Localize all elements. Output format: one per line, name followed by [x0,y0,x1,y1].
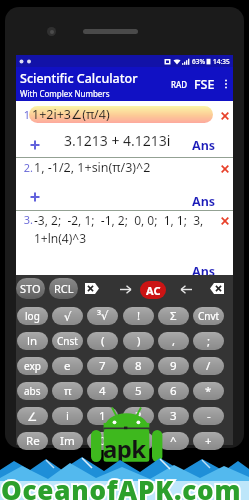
button[interactable]: AC [140,281,166,299]
staticText: RCL [54,281,74,296]
button[interactable]: ( [87,332,118,350]
button[interactable]: / [193,357,224,375]
button[interactable]: Delete entry [218,162,231,175]
button[interactable]: , [158,332,189,350]
button[interactable]: 1 [87,407,118,425]
button[interactable]: abs [17,382,48,400]
button[interactable]: Cnst [52,332,83,350]
staticText: 4 [99,383,106,399]
button[interactable]: More options [219,67,233,101]
button[interactable]: Move left [177,280,195,298]
button[interactable]: ! [123,307,154,325]
staticText: 1+ln(4)^3 [34,230,87,246]
button[interactable]: Backspace [210,283,224,294]
button[interactable]: 2 [123,407,154,425]
button[interactable]: Ans [163,137,221,153]
button[interactable]: ; [193,332,224,350]
button[interactable]: 1+2i+3∠(π/4) [29,106,213,123]
button[interactable]: i [52,407,83,425]
staticText: 2. [21,160,33,175]
staticText: STO [20,281,41,296]
staticText: - [207,408,211,424]
staticText: ln [27,333,38,349]
staticText: ^ [170,433,177,449]
staticText: Σ [170,308,177,324]
button[interactable]: Delete entry [218,214,231,227]
staticText: √ [64,310,72,323]
button[interactable]: exp [17,357,48,375]
button[interactable]: ln [17,332,48,350]
button[interactable]: . [123,432,154,450]
button[interactable]: ∠ [17,407,48,425]
staticText: π [64,383,72,399]
button[interactable]: Ans [163,193,221,209]
button[interactable]: √ [52,307,83,325]
button[interactable]: 6 [158,382,189,400]
staticText: ( [101,333,105,349]
button[interactable]: 9 [158,357,189,375]
button[interactable]: Re [17,432,48,450]
staticText: 3. [21,212,33,227]
staticText: 1, -1/2, 1+sin(π/3)^2 [34,159,151,176]
staticText: 14:35 [213,57,230,66]
staticText: ∠ [27,410,38,423]
button[interactable]: - [193,407,224,425]
button[interactable]: 8 [123,357,154,375]
staticText: 2 [135,408,142,424]
button[interactable]: Σ [158,307,189,325]
staticText: e [64,358,71,374]
button[interactable]: 0 [87,432,118,450]
button[interactable]: log [17,307,48,325]
staticText: -3, 2; -2, 1; -1, 2; 0, 0; 1, 1; 3, [34,212,204,228]
button[interactable]: π [52,382,83,400]
staticText: ³√ [97,308,109,324]
staticText: Ans [192,193,216,209]
button[interactable]: Ans [163,263,221,279]
button[interactable]: Backspace [85,283,99,294]
staticText: 3 [170,408,177,424]
staticText: OceanofAPK.com [1,472,242,500]
staticText: ) [137,333,141,349]
button[interactable]: ^ [158,432,189,450]
button[interactable]: e [52,357,83,375]
button[interactable]: RAD [169,79,190,90]
button[interactable]: 3 [158,407,189,425]
button[interactable]: * [193,382,224,400]
staticText: 1+2i+3∠(π/4) [32,106,110,123]
staticText: 7 [99,358,106,374]
staticText: ; [207,333,211,349]
button[interactable]: Im [52,432,83,450]
staticText: . [137,433,141,449]
button[interactable]: FSE [190,76,219,93]
staticText: 1. [21,107,33,122]
button[interactable]: Delete entry [218,109,231,122]
staticText: RAD [171,79,188,90]
button[interactable]: Cnvt [193,307,224,325]
staticText: Re [26,433,40,449]
staticText: exp [24,359,41,373]
staticText: abs [24,384,41,398]
staticText: log [25,309,40,323]
button[interactable]: RCL [49,278,78,299]
staticText: Im [60,433,75,449]
button[interactable]: + [193,432,224,450]
staticText: 63% [192,57,205,66]
staticText: i [66,408,69,424]
button[interactable]: ) [123,332,154,350]
staticText: 0 [99,433,106,449]
staticText: 8 [135,358,142,374]
button[interactable]: 4 [87,382,118,400]
button[interactable]: 5 [123,382,154,400]
staticText: 1 [99,408,106,424]
staticText: * [205,383,212,399]
button[interactable]: Move right [116,280,134,298]
staticText: Scientific Calculator [20,70,138,87]
staticText: ! [137,308,141,324]
staticText: Ans [192,263,216,279]
button[interactable]: STO [16,278,45,299]
button[interactable]: ³√ [87,307,118,325]
button[interactable]: 7 [87,357,118,375]
staticText: OceanofAPK.com [1,472,242,500]
staticText: 9 [170,358,177,374]
staticText: Cnst [57,334,78,348]
